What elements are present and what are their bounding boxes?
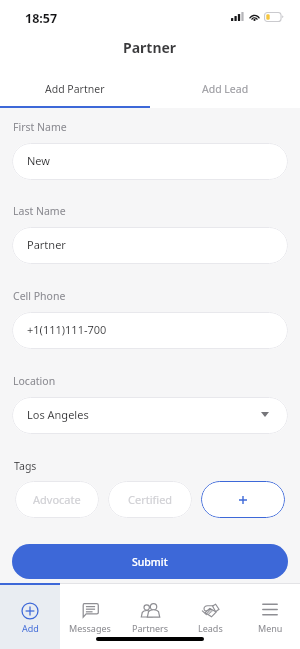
button[interactable]: Partners <box>120 583 180 649</box>
staticText: First Name <box>13 120 67 134</box>
staticText: Cell Phone <box>13 289 66 303</box>
button[interactable]: Menu <box>240 583 300 649</box>
staticText: Messages <box>69 622 111 634</box>
button[interactable]: Leads <box>180 583 240 649</box>
staticText: Last Name <box>13 204 66 218</box>
staticText: New <box>27 153 50 168</box>
staticText: Partners <box>132 622 169 634</box>
staticText: Tags <box>14 459 37 473</box>
staticText: Add <box>22 622 39 634</box>
button[interactable]: Messages <box>60 583 120 649</box>
button[interactable]: Add Lead <box>150 76 300 108</box>
staticText: Partner <box>123 38 177 57</box>
button[interactable]: Certified <box>108 481 192 518</box>
staticText: 18:57 <box>25 10 58 27</box>
button[interactable]: Add tag <box>201 481 285 518</box>
button[interactable]: Submit <box>12 544 288 579</box>
button[interactable]: Los Angeles <box>12 397 288 434</box>
staticText: Certified <box>128 492 173 507</box>
staticText: Menu <box>258 622 283 634</box>
button[interactable]: +1(111)111-700 <box>12 312 288 349</box>
staticText: Partner <box>27 237 66 252</box>
staticText: Submit <box>132 555 168 569</box>
staticText: Leads <box>198 622 223 634</box>
staticText: +1(111)111-700 <box>27 322 107 337</box>
staticText: Los Angeles <box>27 407 89 422</box>
staticText: Advocate <box>33 492 81 507</box>
button[interactable]: Add <box>0 583 60 649</box>
staticText: Add Lead <box>202 82 249 96</box>
button[interactable]: Advocate <box>15 481 99 518</box>
staticText: Add Partner <box>45 82 105 96</box>
staticText: Location <box>13 374 56 388</box>
button[interactable]: Partner <box>12 227 288 264</box>
button[interactable]: Add Partner <box>0 76 150 108</box>
button[interactable]: New <box>12 143 288 180</box>
